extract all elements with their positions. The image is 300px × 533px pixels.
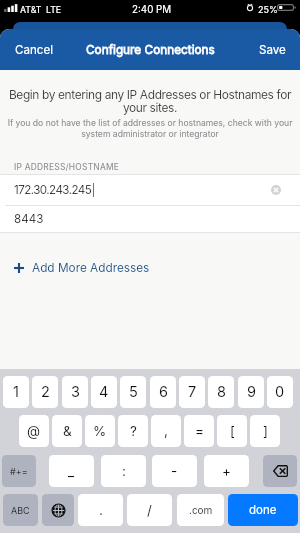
button[interactable]: 2: [32, 376, 58, 408]
staticText: If you do not have the list of addresses…: [5, 118, 295, 139]
button[interactable]: 1: [3, 376, 29, 408]
button[interactable]: 172.30.243.245: [0, 175, 300, 205]
staticText: .: [99, 502, 103, 518]
staticText: _: [68, 463, 75, 479]
button[interactable]: 8: [208, 376, 234, 408]
button[interactable]: ,: [151, 415, 181, 447]
staticText: [: [230, 423, 235, 439]
button[interactable]: &: [52, 415, 82, 447]
button[interactable]: Save: [253, 36, 292, 64]
button[interactable]: 6: [150, 376, 176, 408]
staticText: done: [249, 503, 277, 517]
staticText: :: [122, 463, 126, 479]
button[interactable]: ]: [250, 415, 280, 447]
staticText: &: [63, 423, 72, 439]
button[interactable]: _: [49, 455, 94, 487]
staticText: 2:40 PM: [132, 4, 172, 16]
staticText: #+=: [10, 466, 28, 477]
staticText: 3: [71, 383, 80, 401]
staticText: ABC: [11, 505, 30, 516]
staticText: =: [195, 423, 204, 439]
staticText: 172.30.243.245: [14, 183, 92, 197]
staticText: /: [147, 502, 152, 518]
button[interactable]: ?: [118, 415, 148, 447]
button[interactable]: 3: [62, 376, 88, 408]
button[interactable]: Cancel: [9, 36, 60, 64]
staticText: AT&T: [20, 4, 42, 15]
button[interactable]: Backspace: [263, 455, 297, 487]
button[interactable]: ABC: [3, 494, 38, 526]
staticText: Add More Addresses: [32, 261, 150, 275]
button[interactable]: .com: [177, 494, 224, 526]
staticText: 8: [217, 383, 226, 401]
staticText: 8443: [14, 212, 44, 226]
staticText: 2: [41, 383, 50, 401]
staticText: +: [222, 463, 231, 479]
button[interactable]: =: [184, 415, 214, 447]
staticText: 4: [99, 383, 109, 401]
button[interactable]: +: [204, 455, 249, 487]
staticText: ]: [263, 423, 268, 439]
staticText: 0: [275, 383, 285, 401]
button[interactable]: 8443: [0, 206, 300, 232]
button[interactable]: 4: [91, 376, 117, 408]
button[interactable]: Change keyboard: [42, 494, 74, 526]
button[interactable]: 0: [267, 376, 293, 408]
button[interactable]: 9: [238, 376, 264, 408]
button[interactable]: [: [217, 415, 247, 447]
staticText: %: [93, 423, 107, 439]
staticText: 9: [247, 383, 256, 401]
staticText: Cancel: [15, 43, 54, 57]
staticText: @: [27, 423, 41, 439]
button[interactable]: /: [127, 494, 172, 526]
button[interactable]: :: [101, 455, 146, 487]
staticText: 25%: [258, 4, 278, 15]
staticText: LTE: [46, 4, 62, 15]
button[interactable]: -: [152, 455, 197, 487]
staticText: ?: [130, 423, 137, 439]
staticText: 6: [159, 383, 168, 401]
button[interactable]: Add More Addresses: [0, 258, 160, 278]
button[interactable]: #+=: [2, 455, 36, 487]
staticText: 1: [13, 383, 19, 401]
staticText: Configure Connections: [86, 43, 215, 57]
staticText: 7: [188, 383, 197, 401]
staticText: IP ADDRESS/HOSTNAME: [14, 162, 120, 172]
staticText: Save: [259, 43, 286, 57]
staticText: Begin by entering any IP Addresses or Ho…: [4, 87, 296, 115]
button[interactable]: Clear text: [271, 185, 281, 195]
button[interactable]: 5: [120, 376, 146, 408]
button[interactable]: %: [85, 415, 115, 447]
staticText: ,: [164, 423, 168, 439]
button[interactable]: .: [78, 494, 123, 526]
staticText: .com: [189, 504, 213, 516]
button[interactable]: @: [19, 415, 49, 447]
staticText: 5: [129, 383, 138, 401]
button[interactable]: 7: [179, 376, 205, 408]
button[interactable]: done: [228, 494, 298, 526]
staticText: -: [171, 463, 178, 479]
